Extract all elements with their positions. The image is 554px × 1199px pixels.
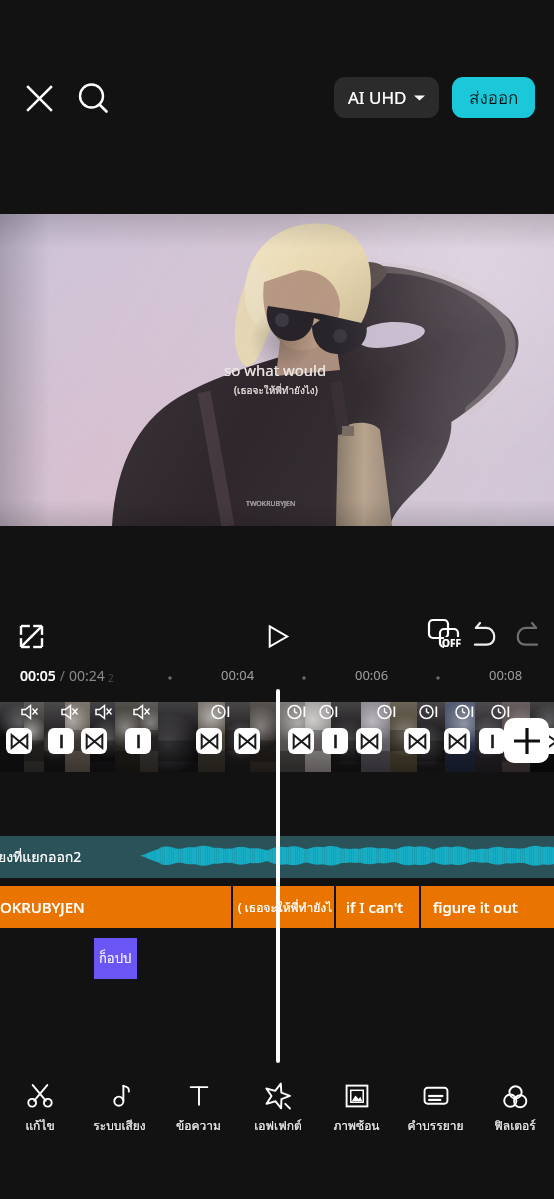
- button[interactable]: ภาพซ้อน: [317, 1068, 396, 1199]
- staticText: ( เธอจะให้พี่ทำยังไ: [238, 898, 333, 917]
- button[interactable]: Transition: [288, 728, 314, 754]
- button[interactable]: Play: [255, 614, 299, 658]
- staticText: OFF: [442, 636, 461, 650]
- staticText: ฟิลเตอร์: [494, 1116, 536, 1135]
- staticText: ข้อความ: [176, 1116, 221, 1135]
- button[interactable]: AI UHD: [334, 77, 439, 118]
- button[interactable]: ระบบเสียง: [80, 1068, 159, 1199]
- button[interactable]: Transition: [538, 728, 554, 754]
- staticText: figure it out: [433, 897, 518, 917]
- staticText: ระบบเสียง: [93, 1116, 146, 1135]
- button[interactable]: ยงที่แยกออก2: [0, 836, 554, 878]
- button[interactable]: Undo: [464, 614, 508, 658]
- button[interactable]: Transition: [196, 728, 222, 754]
- staticText: so what would: [224, 360, 327, 380]
- staticText: /: [56, 666, 69, 685]
- button[interactable]: OKRUBYJEN: [0, 886, 231, 928]
- staticText: 2: [108, 671, 114, 685]
- staticText: AI UHD: [348, 86, 407, 109]
- button[interactable]: figure it out: [421, 886, 554, 928]
- button[interactable]: Keyframe off: [423, 614, 467, 658]
- button[interactable]: แก้ไข: [0, 1068, 80, 1199]
- staticText: OKRUBYJEN: [0, 897, 85, 917]
- button[interactable]: Close: [17, 76, 62, 121]
- button[interactable]: Transition: [6, 728, 32, 754]
- button[interactable]: Search: [70, 75, 114, 119]
- staticText: ส่งออก: [469, 84, 519, 111]
- button[interactable]: Transition: [479, 728, 505, 754]
- button[interactable]: Redo: [504, 614, 548, 658]
- staticText: 00:08: [489, 666, 523, 684]
- staticText: แก้ไข: [25, 1116, 55, 1135]
- button[interactable]: Add clip: [504, 718, 549, 763]
- button[interactable]: if I can't: [336, 886, 419, 928]
- button[interactable]: Transition: [404, 728, 430, 754]
- button[interactable]: Transition: [48, 728, 74, 754]
- staticText: 00:04: [221, 666, 255, 684]
- button[interactable]: Transition: [125, 728, 151, 754]
- staticText: เอฟเฟกต์: [254, 1116, 302, 1135]
- staticText: ก็อปป: [99, 948, 132, 969]
- staticText: if I can't: [346, 897, 404, 917]
- staticText: ยงที่แยกออก2: [0, 846, 82, 868]
- button[interactable]: คำบรรยาย: [396, 1068, 475, 1199]
- button[interactable]: ส่งออก: [452, 77, 535, 118]
- button[interactable]: Transition: [356, 728, 382, 754]
- button[interactable]: Transition: [444, 728, 470, 754]
- staticText: (เธอจะให้พี่ทำยังไง): [234, 383, 318, 399]
- staticText: ภาพซ้อน: [333, 1116, 380, 1135]
- button[interactable]: Transition: [81, 728, 107, 754]
- button[interactable]: ( เธอจะให้พี่ทำยังไ: [233, 886, 334, 928]
- button[interactable]: Fullscreen: [9, 614, 53, 658]
- button[interactable]: Transition: [234, 728, 260, 754]
- button[interactable]: เอฟเฟกต์: [238, 1068, 317, 1199]
- staticText: คำบรรยาย: [407, 1116, 464, 1135]
- button[interactable]: ก็อปป: [94, 938, 137, 979]
- staticText: 00:24: [69, 666, 105, 685]
- staticText: 00:06: [355, 666, 389, 684]
- button[interactable]: Transition: [322, 728, 348, 754]
- staticText: TWOKRUBYJEN: [246, 499, 296, 509]
- button[interactable]: ข้อความ: [159, 1068, 238, 1199]
- button[interactable]: ฟิลเตอร์: [475, 1068, 554, 1199]
- staticText: 00:05: [20, 666, 56, 685]
